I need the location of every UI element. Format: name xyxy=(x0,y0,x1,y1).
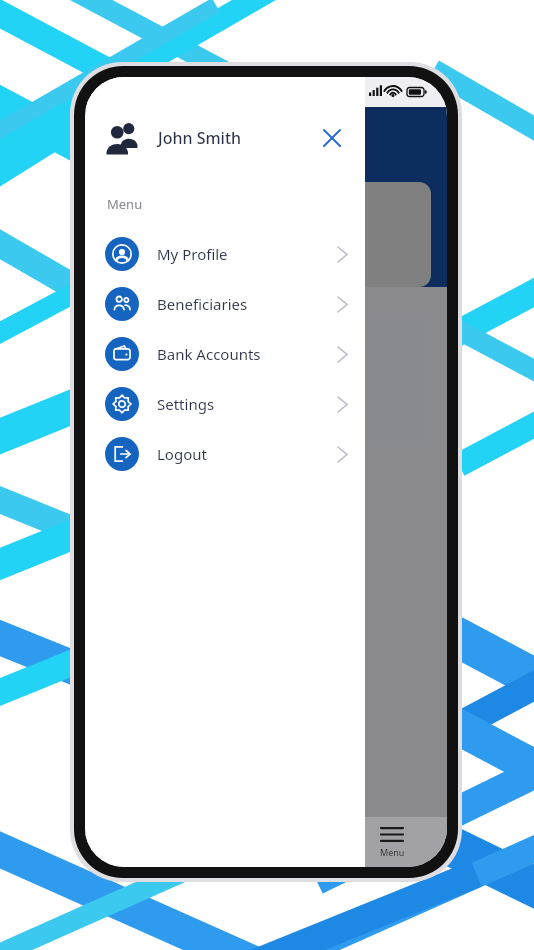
staticText: Verified xyxy=(129,365,185,385)
staticText: Logout xyxy=(157,444,207,464)
button[interactable]: Bank Accounts xyxy=(85,329,365,379)
button[interactable]: Beneficiaries xyxy=(85,279,365,329)
staticText: Menu xyxy=(380,846,405,858)
button[interactable]: Settings xyxy=(85,379,365,429)
staticText: Beneficiaries xyxy=(157,294,248,314)
button[interactable]: My Profile xyxy=(85,229,365,279)
staticText: Settings xyxy=(157,394,215,414)
button[interactable]: Close menu xyxy=(315,121,349,155)
staticText: John Smith xyxy=(158,127,242,149)
staticText: My Profile xyxy=(157,244,228,264)
staticText: Menu xyxy=(107,195,143,213)
staticText: Bank Accounts xyxy=(157,344,261,364)
button[interactable]: Logout xyxy=(85,429,365,479)
button[interactable]: Menu xyxy=(337,817,447,867)
